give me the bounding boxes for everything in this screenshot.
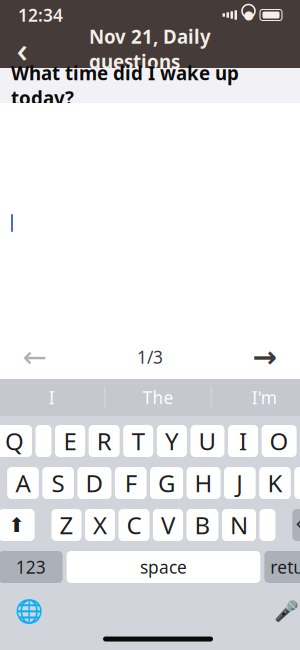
staticText: F (125, 467, 137, 499)
button[interactable]: Next keyboard (7, 596, 51, 626)
staticText: E (64, 425, 77, 457)
staticText: G (158, 467, 175, 499)
staticText: ⌫ (296, 514, 300, 536)
button[interactable]: H (187, 467, 221, 499)
staticText: The (142, 386, 173, 409)
button[interactable]: J (224, 467, 256, 499)
staticText: space (140, 555, 187, 578)
button[interactable]: Next question (238, 337, 292, 377)
button[interactable]: K (259, 467, 291, 499)
staticText: A (15, 467, 30, 499)
staticText: B (194, 509, 210, 541)
staticText: Q (5, 425, 24, 457)
staticText: ● (243, 8, 253, 22)
button[interactable]: Q (0, 425, 32, 457)
button[interactable]: Z (51, 509, 81, 541)
button[interactable]: Shift (0, 509, 35, 541)
staticText: J (236, 467, 243, 499)
button[interactable]: E (55, 425, 85, 457)
button[interactable]: O (262, 425, 297, 457)
button[interactable]: V (153, 509, 183, 541)
button[interactable]: A (7, 467, 39, 499)
staticText: 12:34 (18, 3, 63, 26)
staticText: D (85, 467, 103, 499)
staticText: What time did I wake up today? (11, 61, 239, 110)
staticText: 🎤 (274, 600, 299, 622)
staticText: I'm (252, 386, 277, 409)
staticText: ‹ (16, 26, 27, 72)
button[interactable]: C (118, 509, 149, 541)
button[interactable]: L (294, 467, 300, 499)
staticText: U (198, 425, 216, 457)
staticText: C (126, 509, 141, 541)
staticText: X (93, 509, 107, 541)
button[interactable]: R (89, 425, 120, 457)
button[interactable]: S (42, 467, 74, 499)
button[interactable]: I (0, 379, 104, 416)
staticText: → (252, 340, 277, 374)
button[interactable]: space (67, 551, 260, 583)
staticText: ⬆ (8, 514, 25, 536)
staticText: 🌐 (15, 598, 43, 624)
button[interactable]: return (264, 551, 300, 583)
staticText: O (270, 425, 289, 457)
staticText: 1/3 (137, 345, 163, 368)
staticText: V (161, 509, 175, 541)
staticText: I (239, 425, 247, 457)
staticText: Nov 21, Daily questions (89, 24, 211, 74)
button[interactable]: Y (157, 425, 187, 457)
button[interactable]: I'm (212, 379, 300, 416)
staticText: T (132, 425, 145, 457)
staticText: I (49, 386, 55, 409)
staticText: N (230, 509, 248, 541)
staticText: R (97, 425, 112, 457)
button[interactable]: N (222, 509, 256, 541)
staticText: K (267, 467, 282, 499)
button[interactable]: Delete (292, 509, 300, 541)
button[interactable]: X (85, 509, 115, 541)
button[interactable]: D (77, 467, 111, 499)
button[interactable]: G (150, 467, 183, 499)
staticText: return (270, 555, 300, 578)
button[interactable]: F (115, 467, 146, 499)
button[interactable]: W (35, 425, 51, 457)
staticText: S (52, 467, 65, 499)
button[interactable]: The (105, 379, 211, 416)
staticText: Z (59, 509, 73, 541)
button[interactable]: M (259, 509, 275, 541)
button[interactable]: I (228, 425, 258, 457)
button[interactable]: U (190, 425, 224, 457)
staticText: Y (165, 425, 179, 457)
staticText: 123 (16, 555, 46, 578)
button[interactable]: Previous question (8, 337, 62, 377)
button[interactable]: 123 (0, 551, 63, 583)
button[interactable]: B (186, 509, 218, 541)
button[interactable]: Back (0, 32, 44, 66)
button[interactable]: Dictate (265, 596, 300, 626)
button[interactable]: T (123, 425, 153, 457)
staticText: ← (22, 340, 47, 374)
staticText: H (195, 467, 213, 499)
